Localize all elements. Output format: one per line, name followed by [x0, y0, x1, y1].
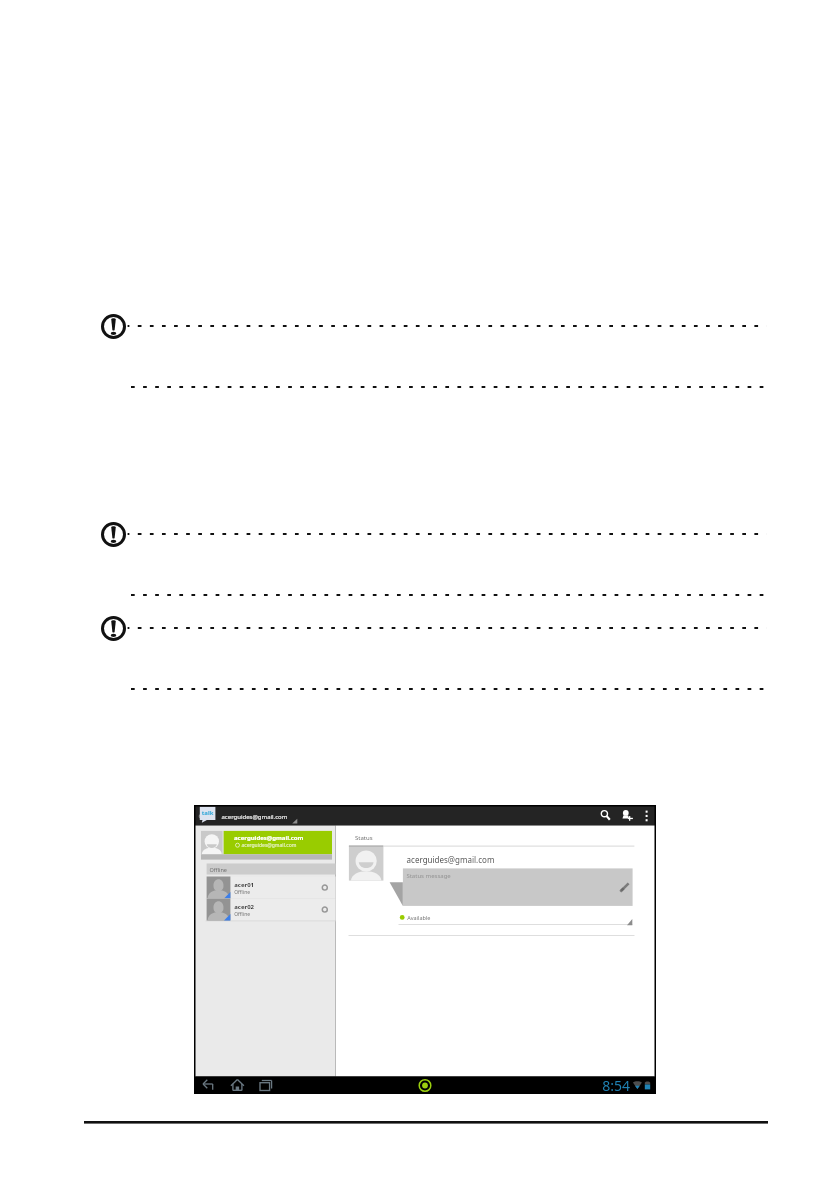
button[interactable]: Back [200, 1077, 218, 1093]
button[interactable]: Screenshot [416, 1077, 434, 1093]
button[interactable]: More options [639, 806, 654, 825]
button[interactable]: acer01, Offline [206, 876, 336, 898]
button[interactable]: Home [229, 1077, 247, 1093]
button[interactable]: Recent apps [257, 1077, 275, 1093]
button[interactable]: Edit status message [403, 867, 633, 906]
button[interactable]: acerguides@gmail.com [202, 831, 332, 854]
button[interactable]: acer02, Offline [206, 898, 336, 920]
button[interactable]: acerguides@gmail.com account [218, 807, 304, 825]
button[interactable]: Available [400, 917, 460, 929]
button[interactable]: Add contact [616, 806, 635, 825]
button[interactable]: Search [596, 806, 614, 825]
button[interactable]: Up [200, 808, 218, 825]
